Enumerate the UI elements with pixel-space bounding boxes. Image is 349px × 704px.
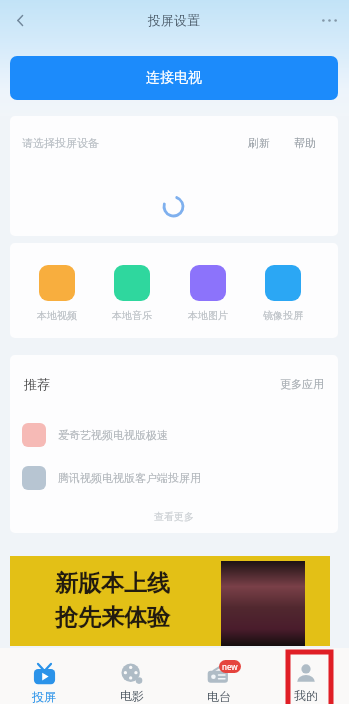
button[interactable]: 电影 xyxy=(88,648,175,704)
staticText: 帮助 xyxy=(294,136,316,150)
staticText: 投屏 xyxy=(32,689,56,704)
button[interactable]: 镜像投屏 xyxy=(254,243,312,338)
button[interactable]: 腾讯视频电视版客户端投屏用 xyxy=(10,456,338,499)
button[interactable]: 投屏 xyxy=(0,648,88,704)
staticText: 我的 xyxy=(294,688,318,703)
staticText: 更多应用 xyxy=(280,377,324,391)
staticText: 腾讯视频电视版客户端投屏用 xyxy=(58,471,201,485)
button[interactable]: new xyxy=(175,648,262,704)
button[interactable]: 刷新 xyxy=(244,132,274,154)
staticText: 电台 xyxy=(207,689,231,704)
button[interactable]: 本地视频 xyxy=(28,243,86,338)
button[interactable]: 更多应用 xyxy=(280,377,324,391)
staticText: 连接电视 xyxy=(146,69,202,87)
button[interactable]: 查看更多 xyxy=(10,499,338,533)
staticText: 抢先来体验 xyxy=(55,603,170,632)
staticText: 本地图片 xyxy=(188,309,228,322)
staticText: 电影 xyxy=(120,688,144,703)
button[interactable]: 帮助 xyxy=(290,132,320,154)
staticText: 镜像投屏 xyxy=(263,309,303,322)
button[interactable]: 连接电视 xyxy=(10,56,338,100)
button[interactable]: 我的 xyxy=(262,648,349,704)
staticText: 本地音乐 xyxy=(112,309,152,322)
staticText: 查看更多 xyxy=(154,510,194,523)
staticText: 爱奇艺视频电视版极速 xyxy=(58,428,168,442)
staticText: 推荐 xyxy=(24,376,50,392)
button[interactable]: More options xyxy=(309,0,349,40)
staticText: 新版本上线 xyxy=(55,569,170,598)
staticText: 本地视频 xyxy=(37,309,77,322)
button[interactable]: 本地音乐 xyxy=(103,243,161,338)
button[interactable]: 本地图片 xyxy=(179,243,237,338)
staticText: 刷新 xyxy=(248,136,270,150)
staticText: 投屏设置 xyxy=(148,12,200,28)
button[interactable]: Back xyxy=(0,0,40,40)
staticText: 请选择投屏设备 xyxy=(22,136,99,150)
button[interactable]: 爱奇艺视频电视版极速 xyxy=(10,413,338,456)
staticText: new xyxy=(222,661,238,672)
button[interactable]: 新版本上线 xyxy=(10,556,330,646)
